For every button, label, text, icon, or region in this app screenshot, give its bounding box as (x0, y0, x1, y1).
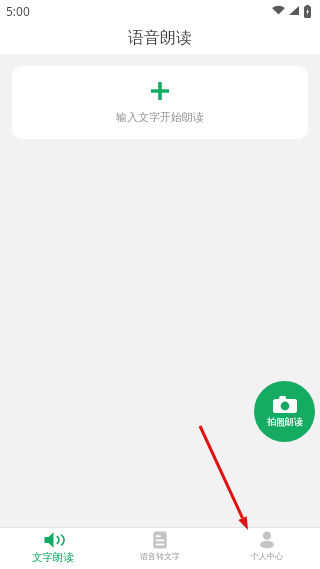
button[interactable]: 拍照朗读 (254, 381, 315, 442)
staticText: 个人中心 (251, 551, 283, 561)
staticText: 文字朗读 (32, 551, 74, 564)
staticText: 拍照朗读 (267, 416, 303, 427)
button[interactable]: 个人中心 (213, 528, 320, 569)
button[interactable]: 文字朗读 (0, 528, 106, 569)
button[interactable]: 语音转文字 (106, 528, 213, 569)
staticText: 5:00 (6, 3, 30, 19)
button[interactable]: 输入文字开始朗读 (12, 66, 308, 139)
staticText: 语音转文字 (140, 551, 180, 561)
staticText: 语音朗读 (128, 28, 192, 48)
staticText: 输入文字开始朗读 (116, 110, 204, 124)
